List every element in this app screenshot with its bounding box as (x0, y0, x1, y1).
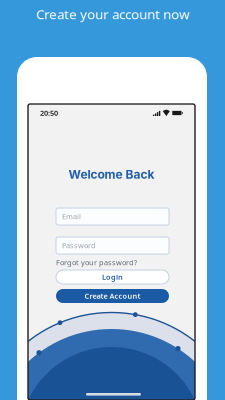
button[interactable]: Password (56, 237, 169, 254)
button[interactable]: Create your account now (0, 3, 225, 25)
staticText: Password (62, 240, 96, 250)
staticText: Create your account now (36, 5, 189, 23)
staticText: Forgot your password? (56, 257, 137, 267)
staticText: Welcome Back (68, 167, 154, 182)
button[interactable]: Login (56, 270, 169, 284)
button[interactable]: Create Account (56, 289, 169, 303)
staticText: Login (102, 272, 123, 282)
staticText: Email (62, 211, 81, 221)
staticText: 20:50 (40, 108, 58, 118)
button[interactable]: Forgot your password? (56, 258, 169, 266)
button[interactable]: Email (56, 208, 169, 225)
staticText: Create Account (84, 291, 140, 301)
